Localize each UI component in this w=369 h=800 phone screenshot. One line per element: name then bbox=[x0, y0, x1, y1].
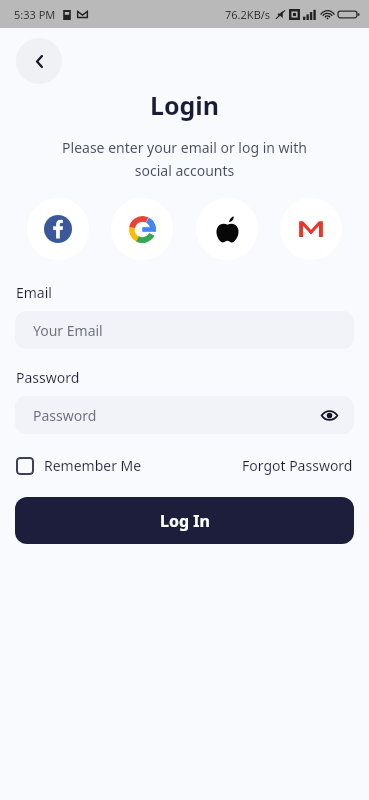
button[interactable]: Show password bbox=[317, 403, 341, 427]
button[interactable]: Back bbox=[16, 38, 62, 84]
staticText: Please enter your email or log in with s… bbox=[30, 138, 339, 180]
button[interactable]: Log in with Google bbox=[111, 198, 173, 260]
button[interactable]: Log in with Gmail bbox=[280, 198, 342, 260]
staticText: Email bbox=[16, 283, 52, 302]
staticText: 5:33 PM bbox=[14, 7, 56, 22]
button[interactable]: Log in with Apple bbox=[196, 198, 258, 260]
button[interactable]: Password bbox=[15, 396, 354, 434]
staticText: Your Email bbox=[33, 321, 103, 340]
staticText: Forgot Password bbox=[242, 456, 353, 475]
staticText: Remember Me bbox=[44, 456, 142, 475]
staticText: Login bbox=[0, 88, 369, 122]
staticText: Log In bbox=[160, 510, 210, 532]
button[interactable]: Your Email bbox=[15, 311, 354, 349]
staticText: Password bbox=[33, 406, 97, 425]
staticText: Password bbox=[16, 368, 80, 387]
button[interactable]: Remember Me bbox=[16, 456, 142, 475]
button[interactable]: Log In bbox=[15, 497, 354, 544]
button[interactable]: Log in with Facebook bbox=[27, 198, 89, 260]
staticText: 76.2KB/s bbox=[225, 7, 271, 22]
button[interactable]: Forgot Password bbox=[242, 456, 353, 475]
